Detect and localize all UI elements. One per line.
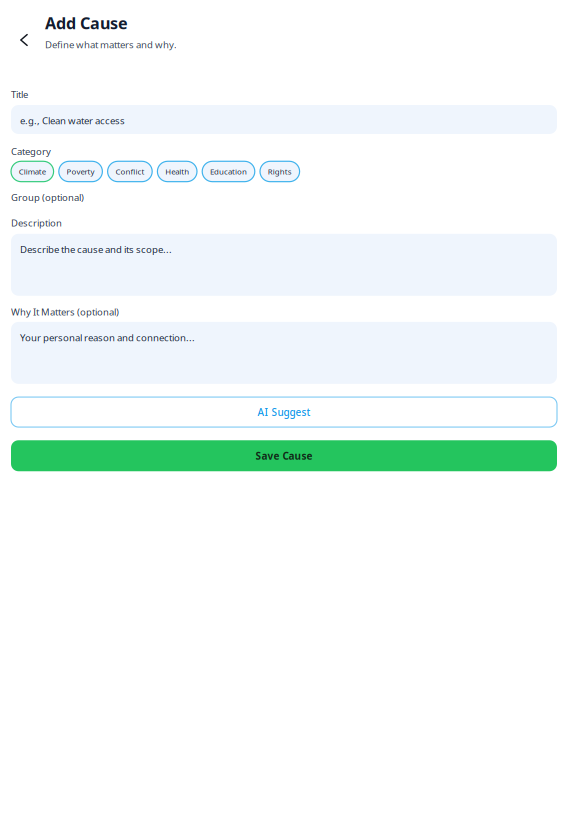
staticText: Rights [268, 166, 292, 177]
button[interactable]: Poverty [59, 161, 102, 182]
button[interactable]: Rights [260, 161, 300, 182]
button[interactable]: Education [202, 161, 255, 182]
button[interactable]: Health [157, 161, 197, 182]
button[interactable]: Save Cause [0, 440, 567, 471]
staticText: AI Suggest [257, 405, 310, 419]
staticText: Education [210, 166, 247, 177]
staticText: Title [11, 88, 28, 101]
staticText: Define what matters and why. [45, 38, 177, 51]
staticText: Category [11, 145, 51, 158]
staticText: e.g., Clean water access [20, 114, 125, 127]
staticText: Health [165, 166, 189, 177]
button[interactable]: Climate [11, 161, 54, 182]
staticText: Description [11, 216, 62, 229]
staticText: Group (optional) [11, 191, 84, 204]
staticText: Describe the cause and its scope... [20, 243, 172, 256]
button[interactable]: Conflict [108, 161, 152, 182]
staticText: Save Cause [255, 449, 312, 463]
staticText: Your personal reason and connection... [20, 331, 195, 344]
button[interactable]: Back [11, 27, 37, 53]
staticText: Why It Matters (optional) [11, 305, 119, 318]
button[interactable]: AI Suggest [0, 397, 567, 427]
staticText: Poverty [67, 166, 95, 177]
staticText: Conflict [115, 166, 144, 177]
staticText: Add Cause [45, 12, 128, 34]
staticText: Climate [19, 166, 46, 177]
